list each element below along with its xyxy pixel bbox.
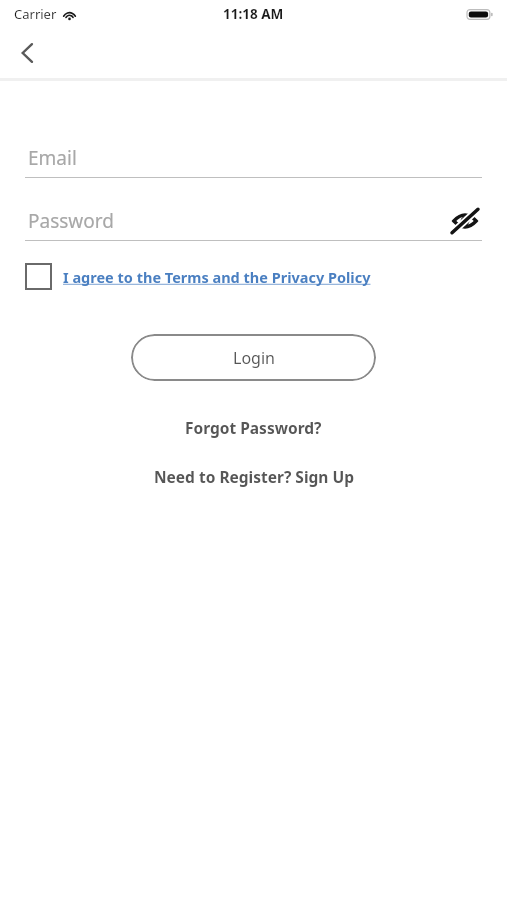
button[interactable]: Login	[131, 334, 376, 381]
button[interactable]: Forgot Password?	[175, 413, 332, 442]
button[interactable]: Need to Register? Sign Up	[144, 462, 364, 491]
button[interactable]: I agree to the Terms and the Privacy Pol…	[25, 263, 482, 290]
button[interactable]: Show password	[448, 204, 482, 238]
staticText: Email	[28, 145, 77, 171]
button[interactable]: Password	[25, 202, 482, 241]
staticText: Forgot Password?	[185, 417, 322, 438]
staticText: 11:18 AM	[223, 5, 284, 23]
staticText: Carrier	[14, 5, 57, 23]
button[interactable]: Back	[6, 31, 50, 75]
button[interactable]: Email	[25, 139, 482, 178]
staticText: Need to Register? Sign Up	[154, 466, 354, 487]
staticText: I agree to the Terms and the Privacy Pol…	[63, 267, 371, 287]
staticText: Login	[233, 347, 275, 369]
staticText: Password	[28, 208, 114, 234]
